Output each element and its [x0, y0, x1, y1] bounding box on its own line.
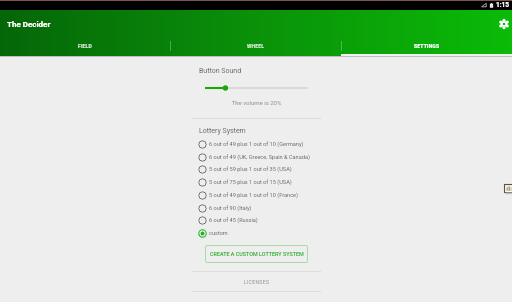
- button[interactable]: CREATE A CUSTOM LOTTERY SYSTEM: [205, 245, 308, 263]
- button[interactable]: custom: [198, 227, 321, 239]
- staticText: FIELD: [78, 43, 92, 49]
- staticText: 6 out of 90 (Italy): [209, 205, 252, 212]
- button[interactable]: 5 out of 59 plus 1 out of 35 (USA): [198, 163, 321, 175]
- button[interactable]: 6 out of 49 (UK, Greece, Spain & Canada): [198, 151, 321, 163]
- staticText: 5 out of 59 plus 1 out of 35 (USA): [209, 166, 292, 173]
- staticText: 5 out of 75 plus 1 out of 15 (USA): [209, 179, 292, 186]
- button[interactable]: 5 out of 49 plus 1 out of 10 (France): [198, 189, 321, 201]
- staticText: custom: [209, 230, 228, 237]
- staticText: 1:15: [496, 1, 510, 9]
- button[interactable]: Settings: [491, 11, 512, 37]
- staticText: SETTINGS: [414, 43, 440, 49]
- button[interactable]: 6 out of 49 plus 1 out of 10 (Germany): [198, 138, 321, 150]
- button[interactable]: 6 out of 45 (Russia): [198, 214, 321, 226]
- staticText: 6 out of 49 (UK, Greece, Spain & Canada): [209, 154, 310, 161]
- staticText: 6 out of 49 plus 1 out of 10 (Germany): [209, 141, 304, 148]
- staticText: CREATE A CUSTOM LOTTERY SYSTEM: [210, 251, 304, 257]
- button[interactable]: 6 out of 90 (Italy): [198, 202, 321, 214]
- staticText: Button Sound: [199, 67, 242, 75]
- button[interactable]: LICENSES: [192, 272, 321, 291]
- staticText: The Decider: [7, 20, 51, 29]
- button[interactable]: Button sound volume: [202, 81, 311, 95]
- staticText: 6 out of 45 (Russia): [209, 217, 258, 224]
- button[interactable]: SETTINGS: [341, 38, 512, 54]
- button[interactable]: 5 out of 75 plus 1 out of 15 (USA): [198, 176, 321, 188]
- staticText: WHEEL: [247, 43, 265, 49]
- button[interactable]: FIELD: [0, 38, 170, 54]
- staticText: Lottery System: [199, 127, 246, 135]
- staticText: 5 out of 49 plus 1 out of 10 (France): [209, 192, 298, 199]
- staticText: LICENSES: [192, 279, 321, 285]
- button[interactable]: WHEEL: [170, 38, 341, 54]
- staticText: The volume is 20%: [192, 99, 321, 106]
